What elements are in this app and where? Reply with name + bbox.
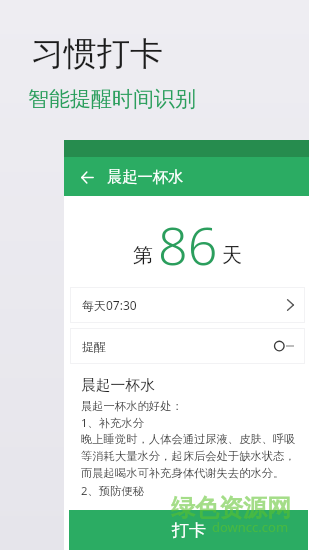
staticText: 天 bbox=[222, 243, 242, 268]
staticText: 绿色资源网 bbox=[171, 493, 291, 523]
staticText: downcc.com bbox=[212, 518, 289, 536]
staticText: 86 bbox=[158, 209, 218, 280]
staticText: 习惯打卡 bbox=[31, 33, 163, 75]
button[interactable]: 打卡 bbox=[69, 510, 308, 550]
staticText: 提醒 bbox=[82, 339, 106, 354]
staticText: 晨起一杯水的好处： 1、补充水分 晚上睡觉时，人体会通过尿液、皮肤、呼吸等消耗大… bbox=[81, 399, 297, 498]
staticText: 打卡 bbox=[172, 520, 206, 541]
staticText: 晨起一杯水 bbox=[81, 376, 155, 395]
button[interactable]: 提醒 bbox=[70, 328, 305, 364]
staticText: 晨起一杯水 bbox=[107, 167, 184, 186]
button[interactable]: Back bbox=[77, 167, 97, 187]
staticText: 智能提醒时间识别 bbox=[28, 86, 196, 112]
staticText: 第 bbox=[133, 243, 153, 268]
button[interactable]: 每天07:30 bbox=[70, 287, 305, 323]
staticText: 每天07:30 bbox=[82, 297, 137, 313]
